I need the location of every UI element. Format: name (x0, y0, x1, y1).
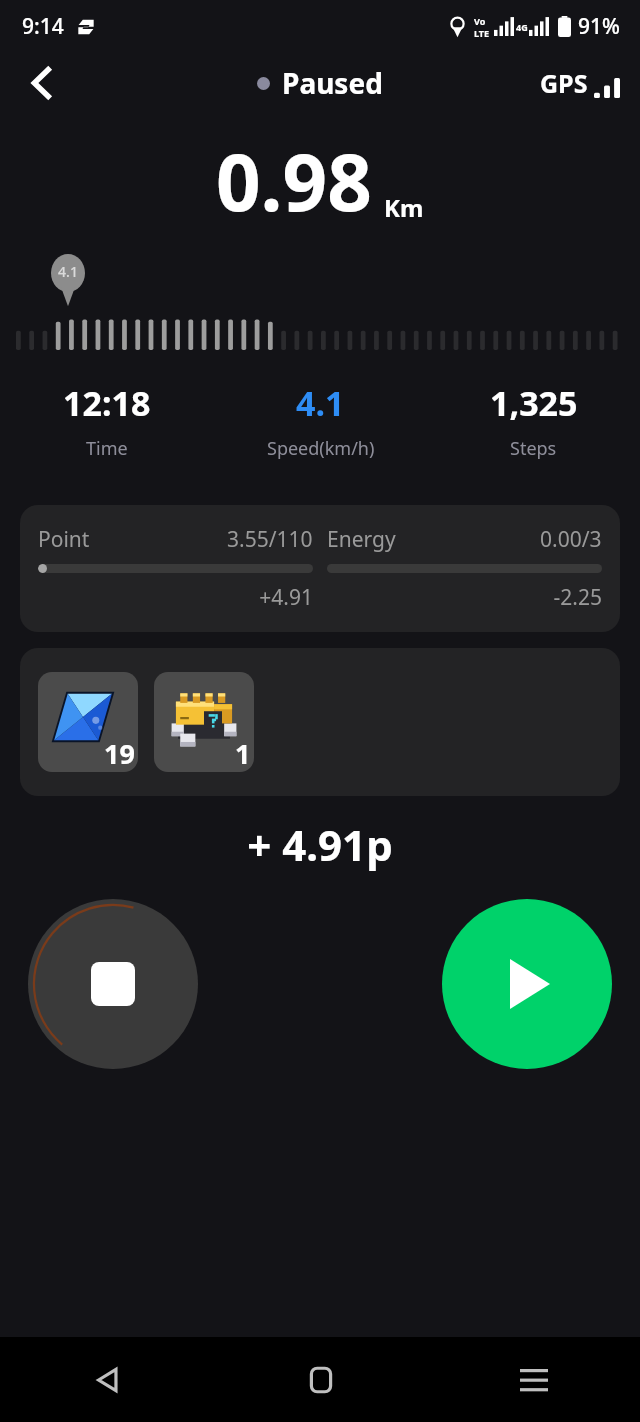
staticText: 4G (516, 21, 528, 33)
staticText: + 4.91p (0, 816, 640, 873)
button[interactable]: Menu (427, 1337, 640, 1422)
staticText: 91% (578, 12, 620, 41)
staticText: LTE (474, 27, 490, 39)
staticText: Energy (327, 525, 396, 554)
button[interactable]: Back (14, 54, 72, 112)
staticText: GPS (540, 66, 588, 100)
staticText: Paused (282, 64, 383, 102)
staticText: 3.55/110 (227, 525, 313, 554)
staticText: Vo (474, 15, 486, 27)
button[interactable]: Resume (442, 899, 612, 1069)
staticText: 4.1 (296, 380, 345, 426)
button[interactable]: Stop (28, 899, 198, 1069)
staticText: 12:18 (63, 380, 151, 426)
staticText: -2.25 (327, 583, 602, 612)
staticText: 0.98 (216, 128, 372, 234)
staticText: +4.91 (38, 583, 313, 612)
button[interactable]: Point (20, 505, 620, 632)
button[interactable]: GPS signal (534, 58, 626, 108)
staticText: 9:14 (22, 12, 64, 41)
staticText: 1 (235, 735, 251, 772)
staticText: Point (38, 525, 90, 554)
button[interactable]: Gem x19 (38, 672, 138, 772)
button[interactable]: Home (214, 1337, 427, 1422)
staticText: Time (86, 436, 128, 461)
staticText: Steps (510, 436, 557, 461)
staticText: Speed(km/h) (267, 436, 375, 461)
button[interactable]: Mystery box x1 (154, 672, 254, 772)
staticText: Km (384, 191, 424, 224)
staticText: 0.00/3 (540, 525, 602, 554)
staticText: 1,325 (490, 380, 578, 426)
staticText: 4.1 (52, 262, 84, 281)
button[interactable]: Back (0, 1337, 214, 1422)
staticText: 19 (104, 735, 135, 772)
